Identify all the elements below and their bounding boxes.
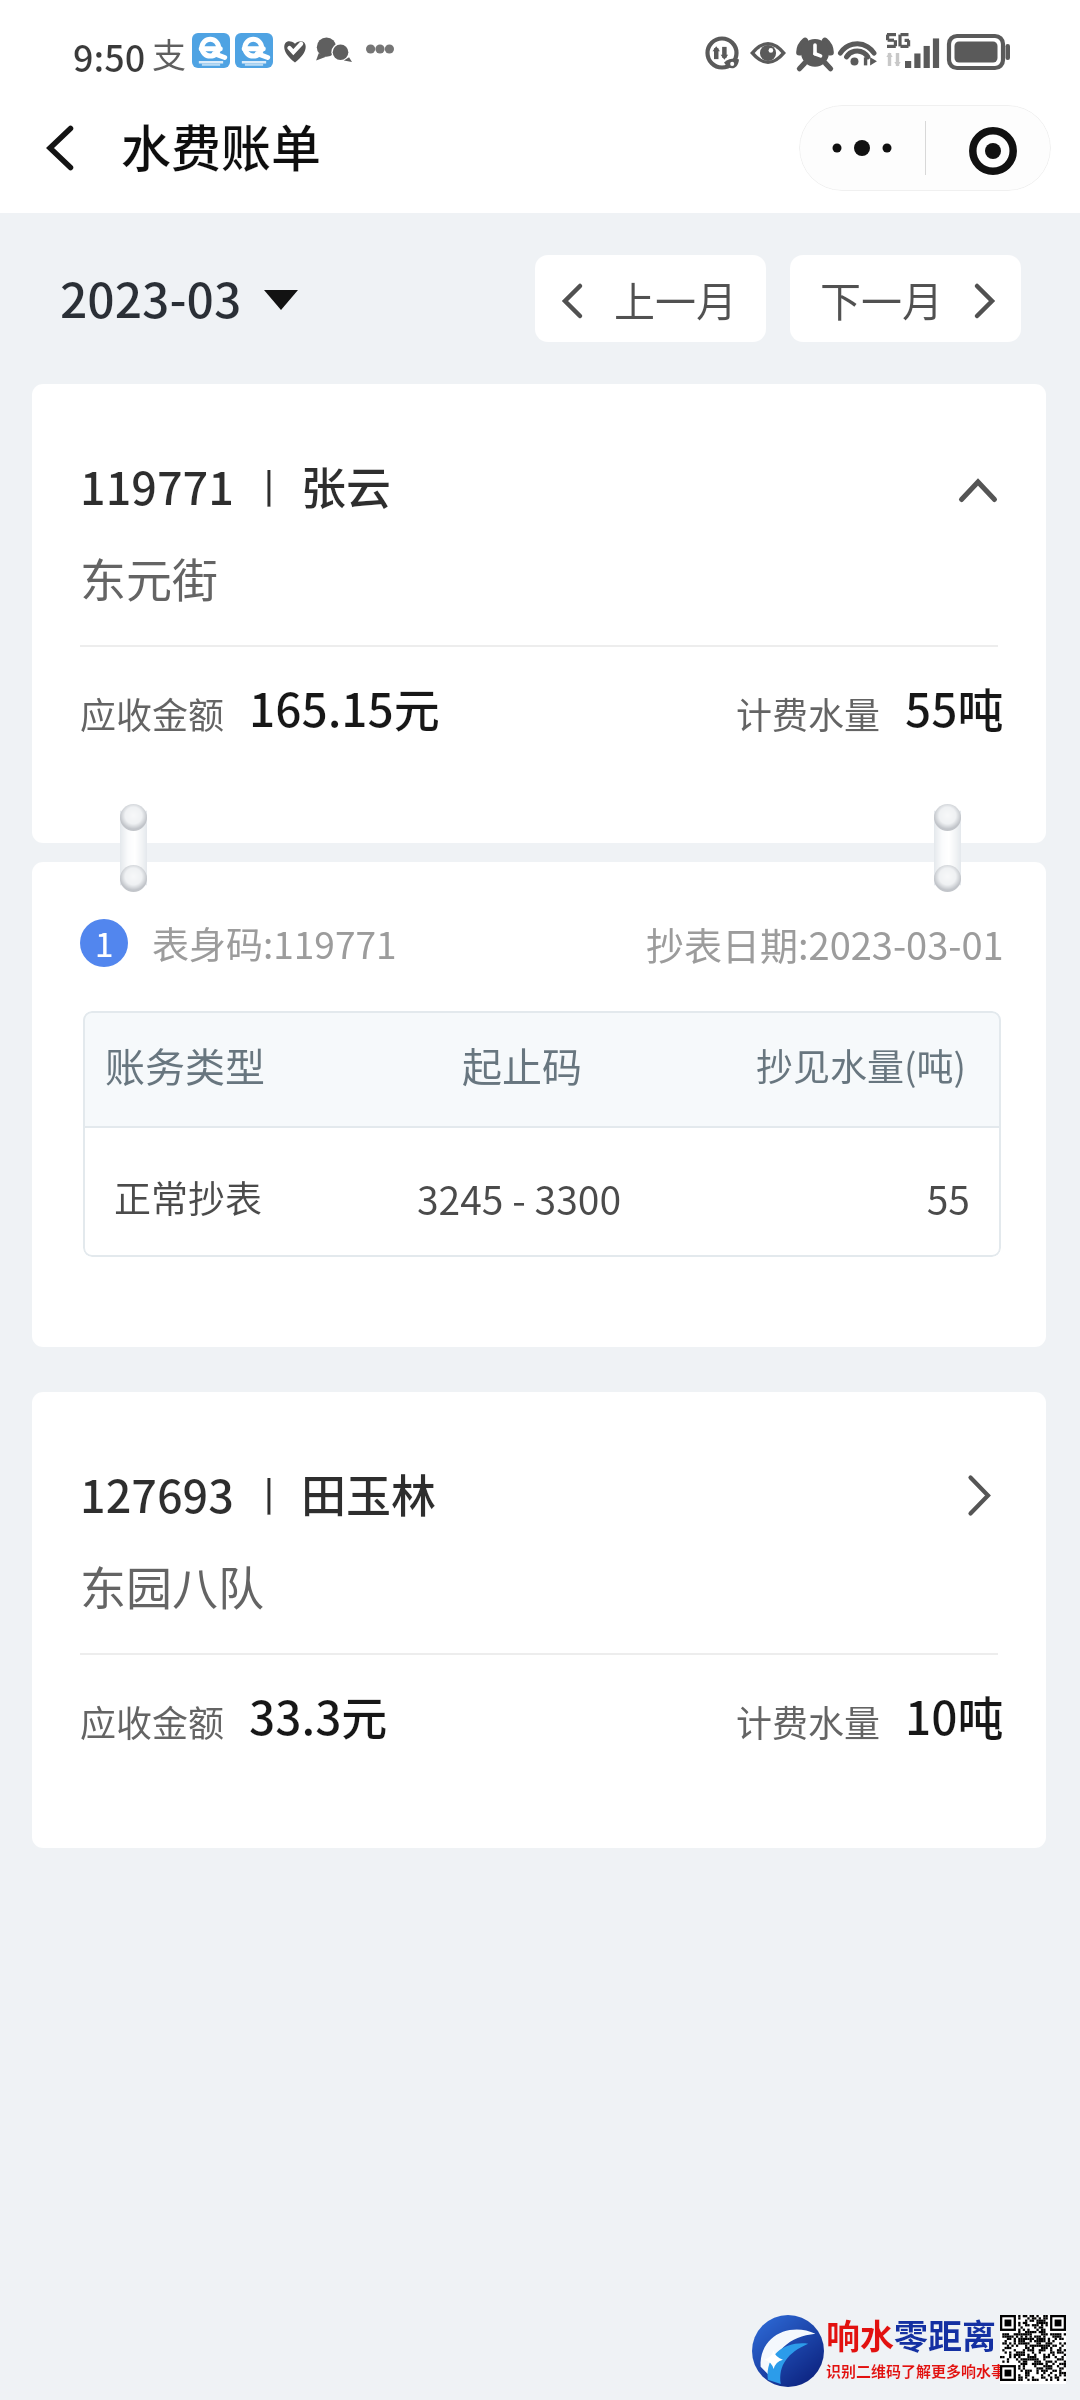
staticText: 10吨 (905, 1682, 1004, 1749)
staticText: 零距离 (894, 2310, 996, 2359)
staticText: 田玉林 (301, 1461, 437, 1526)
staticText: 账务类型 (105, 1036, 383, 1094)
staticText: 东园八队 (80, 1552, 264, 1619)
button[interactable]: Mini program menu (926, 105, 1051, 191)
staticText: 2023-03 (60, 262, 242, 332)
button[interactable]: 下一月 (790, 255, 1021, 342)
staticText: 下一月 (820, 269, 943, 328)
staticText: 水费账单 (121, 109, 321, 181)
staticText: 识别二维码了解更多响水事 (826, 2360, 1007, 2382)
staticText: 计费水量 (736, 1695, 881, 1747)
staticText: 55吨 (905, 674, 1004, 741)
button[interactable]: Expand (932, 1452, 1032, 1552)
button[interactable]: More options (799, 105, 925, 191)
button[interactable]: 119771 (32, 384, 1046, 843)
button[interactable]: Collapse (932, 444, 1032, 544)
staticText: 计费水量 (736, 687, 881, 739)
staticText: 3245 - 3300 (363, 1170, 675, 1226)
staticText: 119771 (80, 453, 234, 518)
staticText: 东元街 (80, 544, 218, 611)
staticText: 应收金额 (80, 687, 225, 739)
staticText: 165.15元 (249, 674, 440, 741)
button[interactable]: Back (24, 113, 94, 183)
staticText: 9:50 (73, 30, 146, 82)
staticText: 表身码:119771 (152, 916, 397, 970)
staticText: 起止码 (366, 1036, 678, 1094)
staticText: 张云 (301, 453, 392, 518)
staticText: 应收金额 (80, 1695, 225, 1747)
button[interactable]: 127693 (32, 1392, 1046, 1848)
staticText: 1 (95, 919, 114, 967)
staticText: 丨 (249, 457, 289, 515)
staticText: 丨 (249, 1465, 289, 1523)
staticText: 抄表日期:2023-03-01 (646, 916, 1004, 971)
staticText: 上一月 (614, 269, 737, 328)
staticText: 55 (695, 1170, 970, 1226)
staticText: 33.3元 (249, 1682, 388, 1749)
button[interactable]: 上一月 (535, 255, 766, 342)
staticText: 抄见水量(吨) (695, 1038, 966, 1092)
staticText: 支 (152, 29, 186, 78)
staticText: 127693 (80, 1461, 234, 1526)
staticText: 响水 (826, 2310, 894, 2359)
staticText: 正常抄表 (114, 1170, 383, 1224)
button[interactable]: 2023-03 (60, 262, 298, 332)
